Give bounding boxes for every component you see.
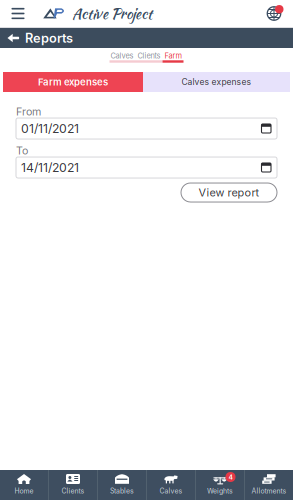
staticText: Weights	[207, 487, 233, 495]
button[interactable]: Language	[264, 0, 293, 27]
staticText: 14/11/2021	[21, 160, 79, 175]
staticText: Clients	[137, 51, 160, 60]
button[interactable]: Home	[0, 470, 48, 500]
staticText: Allotments	[251, 487, 286, 495]
staticText: Reports	[25, 30, 73, 46]
button[interactable]: 4	[196, 470, 244, 500]
button[interactable]: Menu	[0, 0, 29, 27]
staticText: Clients	[61, 487, 84, 495]
staticText: Farm	[164, 51, 182, 60]
staticText: 01/11/2021	[21, 121, 79, 136]
staticText: Calves expenses	[181, 77, 251, 87]
button[interactable]: Stables	[98, 470, 146, 500]
staticText: Calves	[159, 487, 182, 495]
button[interactable]: Calves	[110, 51, 133, 60]
button[interactable]: Reports	[0, 28, 73, 48]
button[interactable]: Farm expenses	[3, 72, 143, 92]
button[interactable]: Clients	[49, 470, 97, 500]
staticText: From	[16, 105, 41, 118]
staticText: To	[16, 144, 28, 157]
staticText: Farm expenses	[38, 76, 108, 88]
button[interactable]: View report	[181, 183, 277, 202]
staticText: Calves	[110, 51, 133, 60]
button[interactable]: Calves	[147, 470, 195, 500]
staticText: Home	[14, 487, 33, 495]
button[interactable]: 01/11/2021	[16, 118, 277, 139]
button[interactable]: Clients	[137, 51, 160, 60]
button[interactable]: 14/11/2021	[16, 157, 277, 178]
staticText: Stables	[110, 487, 134, 495]
staticText: 4	[228, 473, 232, 481]
button[interactable]: Calves expenses	[143, 72, 290, 92]
button[interactable]: Farm	[164, 51, 182, 60]
staticText: View report	[198, 186, 259, 199]
button[interactable]: Allotments	[245, 470, 293, 500]
staticText: Active Project	[72, 3, 152, 24]
